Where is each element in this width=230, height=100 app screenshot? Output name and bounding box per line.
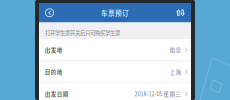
staticText: 车票预订 — [101, 8, 129, 18]
button[interactable]: Swap origin and destination — [172, 3, 191, 22]
button[interactable]: Back — [39, 3, 58, 22]
button[interactable]: 出发地 — [39, 39, 191, 60]
staticText: 出发地 — [45, 46, 63, 54]
staticText: 上海 — [170, 68, 182, 76]
staticText: 2018-12-05 星期三 — [135, 90, 182, 98]
staticText: 打开学生票开关后只可购买学生票 — [45, 29, 120, 36]
button[interactable]: 目的地 — [39, 61, 191, 83]
staticText: 目的地 — [45, 68, 63, 76]
staticText: 南京 — [170, 46, 182, 54]
staticText: 出发日期 — [45, 90, 69, 98]
button[interactable]: 出发日期 — [39, 83, 191, 100]
